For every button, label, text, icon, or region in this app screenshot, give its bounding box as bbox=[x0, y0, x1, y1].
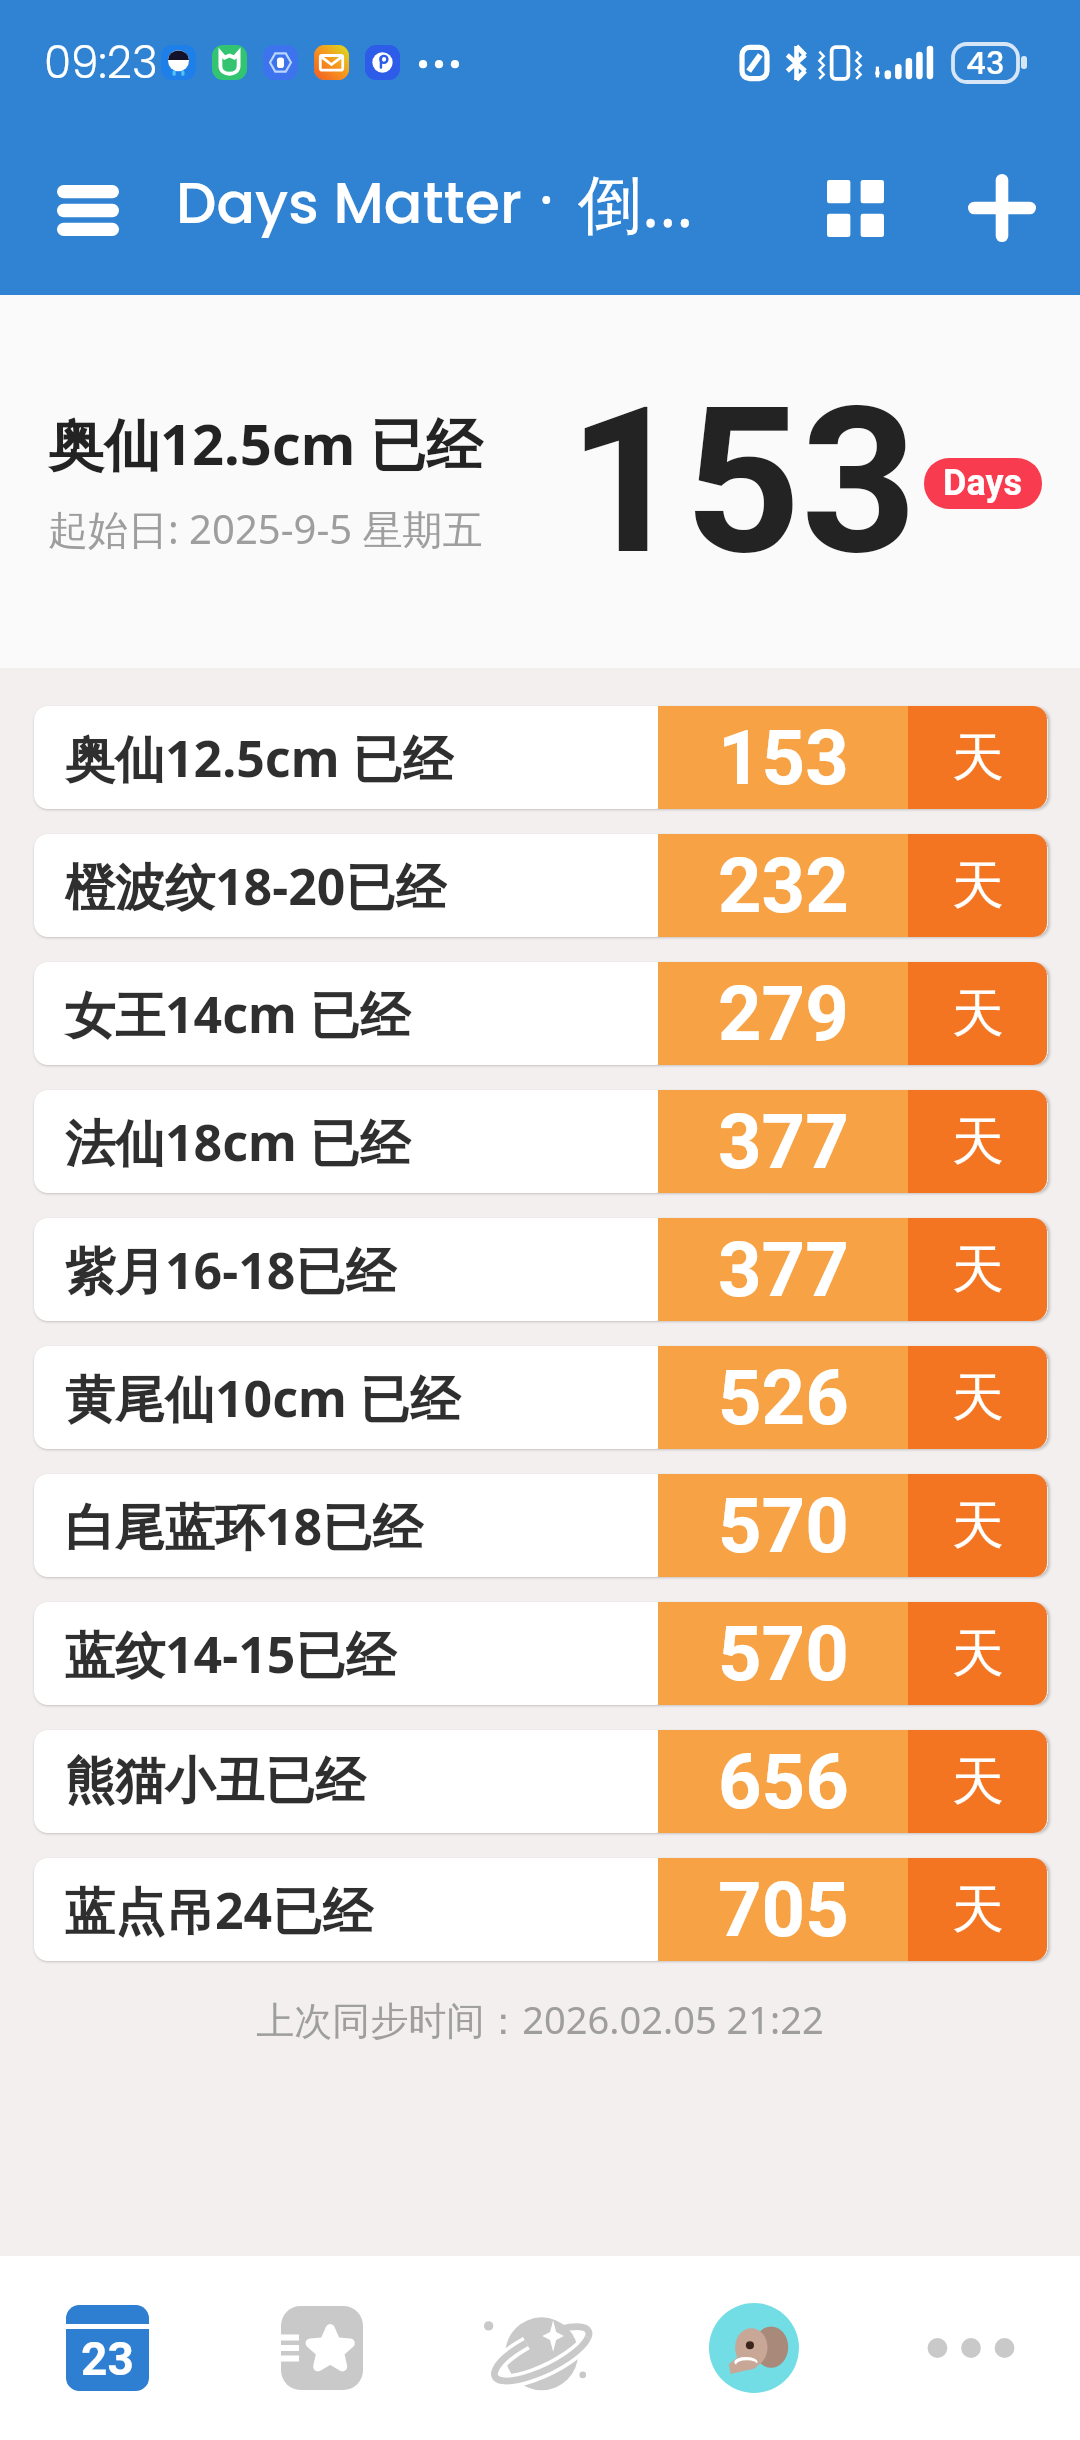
button[interactable]: 白尾蓝环18已经 bbox=[34, 1474, 1047, 1577]
staticText: 天 bbox=[952, 1749, 1004, 1815]
staticText: 黄尾仙10cm 已经 bbox=[65, 1364, 460, 1432]
staticText: 09:23 bbox=[44, 32, 158, 94]
button[interactable]: 蓝点吊24已经 bbox=[34, 1858, 1047, 1961]
staticText: 天 bbox=[952, 1493, 1004, 1559]
staticText: 526 bbox=[718, 1353, 849, 1442]
staticText: 天 bbox=[952, 981, 1004, 1047]
staticText: 377 bbox=[718, 1225, 849, 1314]
button[interactable]: Grid view bbox=[770, 125, 940, 295]
staticText: 23 bbox=[81, 2332, 134, 2386]
button[interactable]: Discover bbox=[429, 2256, 645, 2440]
staticText: 天 bbox=[952, 1877, 1004, 1943]
button[interactable]: More bbox=[862, 2256, 1080, 2440]
staticText: 紫月16-18已经 bbox=[65, 1236, 396, 1304]
staticText: 倒... bbox=[578, 159, 694, 246]
button[interactable]: 蓝纹14-15已经 bbox=[34, 1602, 1047, 1705]
button[interactable]: Menu bbox=[0, 125, 175, 295]
staticText: Days Matter bbox=[176, 163, 522, 243]
staticText: 天 bbox=[952, 1109, 1004, 1175]
staticText: 天 bbox=[952, 1237, 1004, 1303]
staticText: 153 bbox=[568, 363, 918, 601]
staticText: 570 bbox=[718, 1609, 849, 1698]
staticText: 279 bbox=[718, 969, 849, 1058]
button[interactable]: Add bbox=[923, 125, 1080, 295]
staticText: 570 bbox=[718, 1481, 849, 1570]
staticText: 白尾蓝环18已经 bbox=[65, 1492, 423, 1560]
button[interactable]: 法仙18cm 已经 bbox=[34, 1090, 1047, 1193]
staticText: 天 bbox=[952, 1365, 1004, 1431]
button[interactable]: 紫月16-18已经 bbox=[34, 1218, 1047, 1321]
staticText: 232 bbox=[718, 841, 849, 930]
staticText: 153 bbox=[718, 713, 849, 802]
staticText: 法仙18cm 已经 bbox=[65, 1108, 410, 1176]
staticText: 女王14cm 已经 bbox=[65, 980, 410, 1048]
staticText: 橙波纹18-20已经 bbox=[65, 852, 446, 920]
button[interactable]: Countdown bbox=[0, 2256, 214, 2440]
staticText: 377 bbox=[718, 1097, 849, 1186]
button[interactable]: 黄尾仙10cm 已经 bbox=[34, 1346, 1047, 1449]
staticText: 起始日: 2025-9-5 星期五 bbox=[48, 501, 483, 556]
staticText: 奥仙12.5cm 已经 bbox=[65, 724, 453, 792]
staticText: · bbox=[539, 161, 554, 235]
staticText: 蓝点吊24已经 bbox=[65, 1876, 373, 1944]
staticText: 天 bbox=[952, 725, 1004, 791]
button[interactable]: Profile bbox=[645, 2256, 862, 2440]
button[interactable]: 奥仙12.5cm 已经 bbox=[34, 706, 1047, 809]
button[interactable]: 女王14cm 已经 bbox=[34, 962, 1047, 1065]
staticText: 奥仙12.5cm 已经 bbox=[48, 405, 482, 481]
button[interactable]: 熊猫小丑已经 bbox=[34, 1730, 1047, 1833]
staticText: 656 bbox=[718, 1737, 849, 1826]
staticText: 熊猫小丑已经 bbox=[65, 1750, 365, 1813]
staticText: 天 bbox=[952, 1621, 1004, 1687]
button[interactable]: 橙波纹18-20已经 bbox=[34, 834, 1047, 937]
staticText: 43 bbox=[966, 41, 1005, 84]
button[interactable]: Favourites bbox=[214, 2256, 429, 2440]
staticText: Days bbox=[943, 462, 1023, 504]
staticText: 705 bbox=[718, 1865, 849, 1954]
staticText: 上次同步时间：2026.02.05 21:22 bbox=[0, 1993, 1080, 2045]
staticText: 天 bbox=[952, 853, 1004, 919]
staticText: 蓝纹14-15已经 bbox=[65, 1620, 396, 1688]
